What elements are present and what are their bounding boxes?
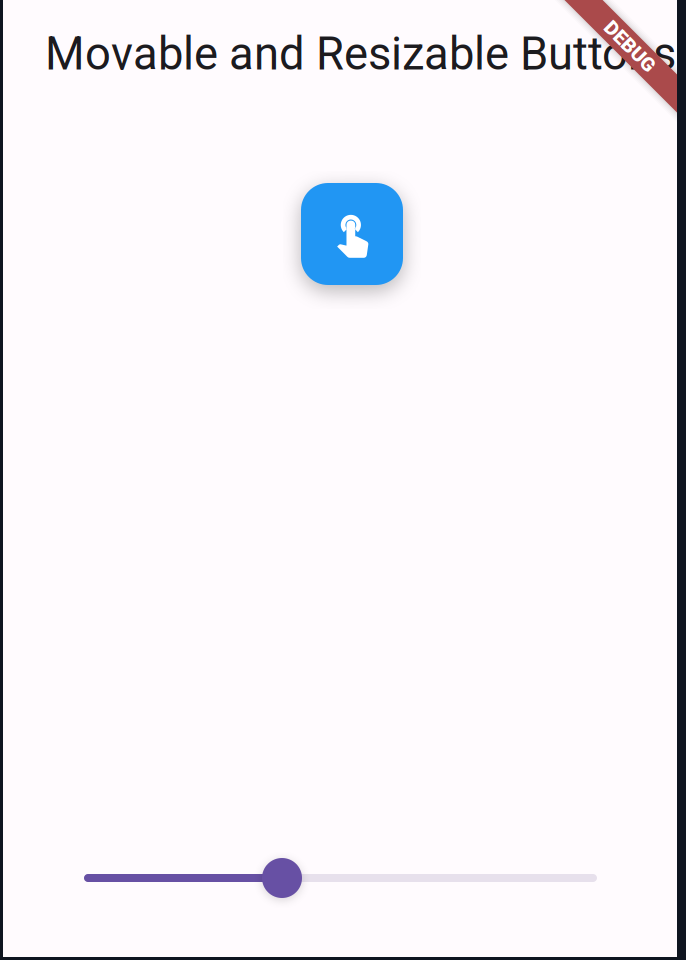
- staticText: Movable and Resizable Buttons: [45, 27, 676, 80]
- staticText: DEBUG: [598, 35, 662, 58]
- button[interactable]: Movable resizable button: [301, 183, 403, 285]
- button[interactable]: Button size slider: [84, 858, 597, 898]
